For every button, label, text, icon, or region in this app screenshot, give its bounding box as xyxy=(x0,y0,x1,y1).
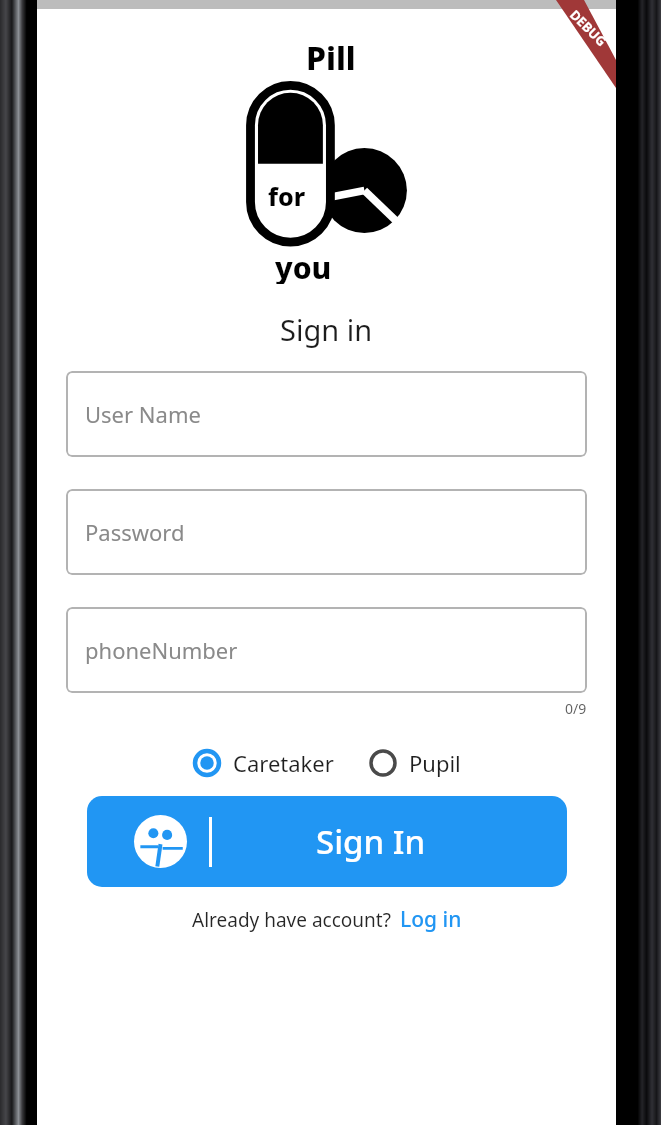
button[interactable]: Log in xyxy=(400,905,462,934)
button[interactable]: Pupil xyxy=(366,744,463,782)
staticText: Sign in xyxy=(280,310,373,349)
staticText: phoneNumber xyxy=(85,635,238,665)
staticText: 0/9 xyxy=(565,699,587,718)
staticText: Sign In xyxy=(316,819,426,864)
staticText: Pupil xyxy=(409,748,461,778)
staticText: User Name xyxy=(85,399,201,429)
staticText: Password xyxy=(85,517,185,547)
staticText: you xyxy=(275,247,332,284)
staticText: for xyxy=(268,179,306,213)
other: Group account xyxy=(134,815,187,868)
staticText: Caretaker xyxy=(233,748,334,778)
staticText: Already have account? xyxy=(192,907,391,933)
button[interactable]: phoneNumber xyxy=(66,607,587,693)
button[interactable]: Password xyxy=(66,489,587,575)
button[interactable]: Group account xyxy=(87,796,567,887)
staticText: DEBUG xyxy=(566,6,611,50)
button[interactable]: Caretaker xyxy=(190,744,336,782)
staticText: Pill xyxy=(306,36,356,80)
button[interactable]: User Name xyxy=(66,371,587,457)
staticText: Log in xyxy=(400,905,462,934)
